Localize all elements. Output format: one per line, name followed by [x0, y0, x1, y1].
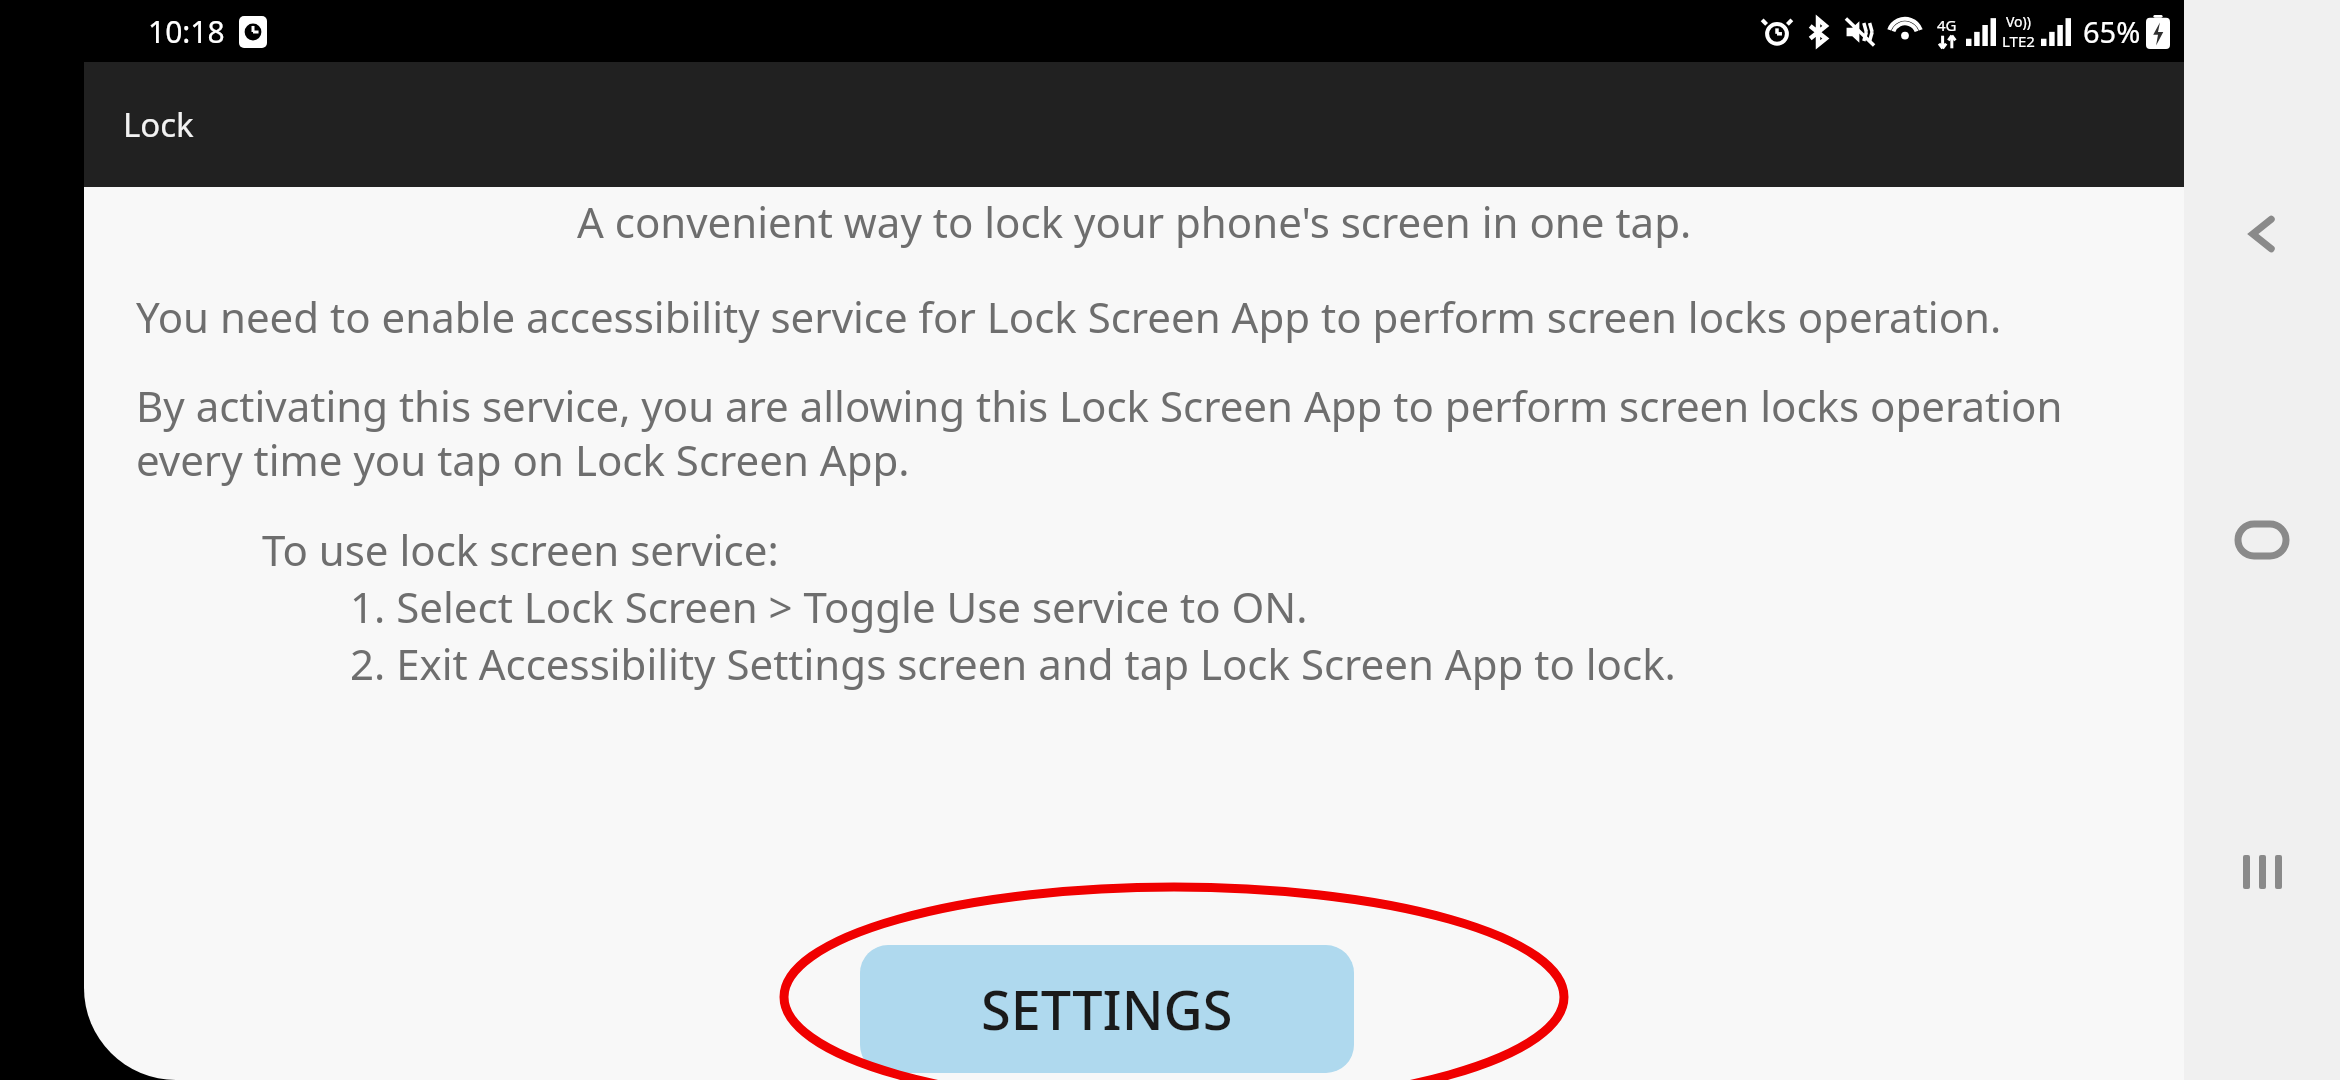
staticText: 10:18: [148, 11, 225, 52]
staticText: To use lock screen service:: [262, 521, 779, 578]
button[interactable]: Back: [2214, 186, 2310, 282]
staticText: By activating this service, you are allo…: [136, 377, 2154, 489]
staticText: Vo)): [2006, 12, 2031, 31]
staticText: LTE2: [2002, 31, 2035, 51]
staticText: 65%: [2083, 12, 2141, 51]
staticText: A convenient way to lock your phone's sc…: [577, 193, 1692, 250]
staticText: Lock: [123, 102, 194, 147]
staticText: 2. Exit Accessibility Settings screen an…: [350, 635, 1676, 692]
button[interactable]: Recents: [2214, 824, 2310, 920]
staticText: 4G: [1937, 15, 1957, 35]
staticText: You need to enable accessibility service…: [136, 288, 2002, 345]
button[interactable]: SETTINGS: [860, 945, 1354, 1073]
staticText: SETTINGS: [981, 972, 1233, 1046]
button[interactable]: Home: [2214, 492, 2310, 588]
staticText: 1. Select Lock Screen > Toggle Use servi…: [350, 578, 1308, 635]
